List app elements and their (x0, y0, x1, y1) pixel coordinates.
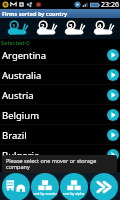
button[interactable]: Stage 4 (92, 18, 114, 39)
staticText: 3 (69, 22, 73, 30)
staticText: 23:26 (101, 0, 119, 9)
staticText: Argentina (2, 49, 47, 62)
button[interactable]: Storage (31, 173, 59, 200)
staticText: sort by alpha (63, 191, 85, 196)
button[interactable]: Next (90, 173, 118, 200)
staticText: Please select one mover or storage compa… (6, 157, 97, 171)
staticText: 2 (41, 22, 45, 30)
staticText: 4 (98, 22, 102, 30)
staticText: Australia (2, 69, 42, 82)
button[interactable]: Show Bulgaria firms (107, 149, 119, 161)
staticText: Brazil (2, 129, 27, 142)
button[interactable]: Packing (60, 173, 88, 200)
button[interactable]: Show Austria firms (107, 89, 119, 101)
staticText: Bulgaria (2, 149, 40, 162)
button[interactable]: Stage 2 (35, 18, 57, 39)
staticText: Firms sorted by country (2, 10, 68, 17)
button[interactable]: Belgium (0, 105, 120, 125)
button[interactable]: Show Brazil firms (107, 129, 119, 141)
button[interactable]: Show Australia firms (107, 69, 119, 81)
button[interactable]: Australia (0, 65, 120, 85)
staticText: Belgium (2, 109, 40, 122)
button[interactable]: Movers (2, 173, 30, 200)
button[interactable]: Stage 1 (6, 18, 28, 39)
button[interactable]: Stage 3 (63, 18, 85, 39)
button[interactable]: Brazil (0, 125, 120, 145)
button[interactable]: Austria (0, 85, 120, 105)
button[interactable]: Bulgaria (0, 145, 120, 165)
staticText: sort by country (33, 191, 58, 196)
staticText: 1 (12, 22, 16, 30)
staticText: Selected:0 (1, 39, 30, 45)
button[interactable]: Show Belgium firms (107, 109, 119, 121)
button[interactable]: Show Argentina firms (107, 49, 119, 61)
button[interactable]: Argentina (0, 45, 120, 65)
staticText: Austria (2, 89, 34, 102)
